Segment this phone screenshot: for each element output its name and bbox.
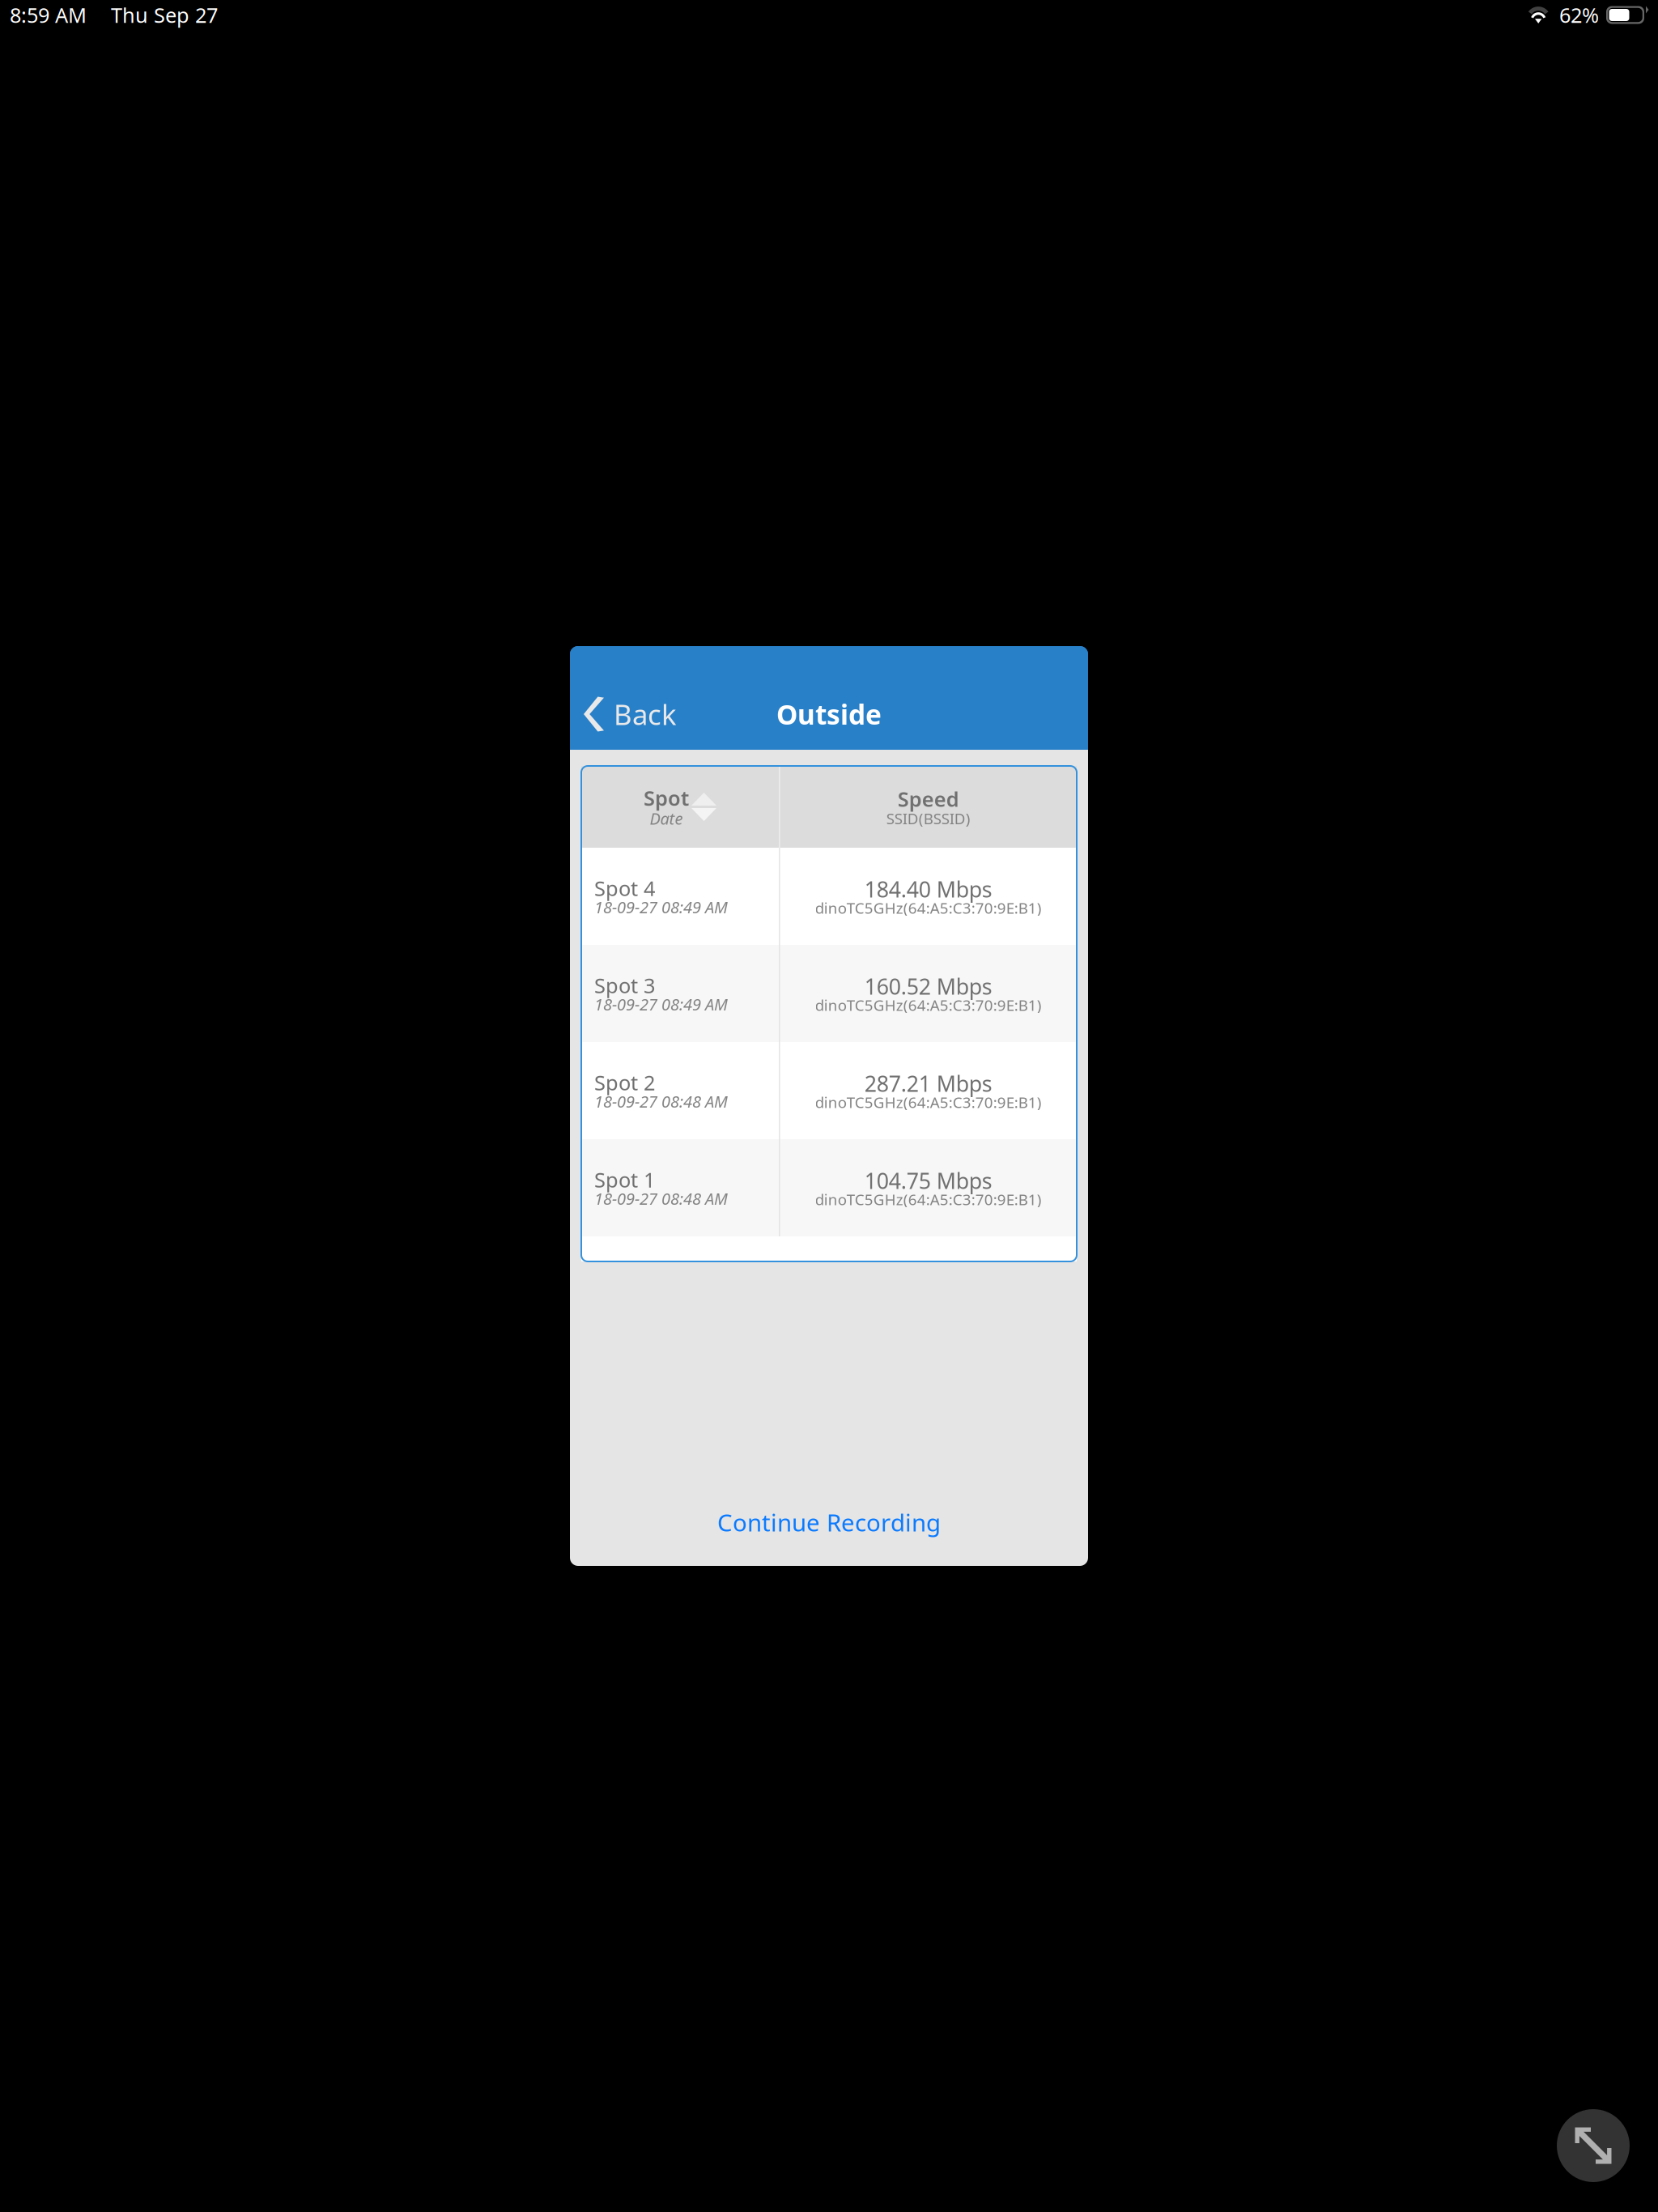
staticText: 18-09-27 08:48 AM — [594, 1188, 728, 1210]
staticText: Thu Sep 27 — [111, 1, 218, 29]
staticText: Spot 2 — [594, 1069, 655, 1096]
staticText: 8:59 AM — [10, 1, 87, 29]
staticText: 62% — [1559, 1, 1599, 29]
button[interactable]: Spot 2 — [581, 1042, 1077, 1139]
button[interactable]: Spot 1 — [581, 1139, 1077, 1236]
staticText: 160.52 Mbps — [864, 972, 992, 1001]
staticText: dinoTC5GHz(64:A5:C3:70:9E:B1) — [815, 995, 1042, 1015]
staticText: Spot 3 — [594, 972, 655, 999]
staticText: Continue Recording — [717, 1506, 941, 1538]
button[interactable]: Spot — [581, 766, 779, 848]
staticText: 104.75 Mbps — [864, 1166, 992, 1195]
staticText: dinoTC5GHz(64:A5:C3:70:9E:B1) — [815, 898, 1042, 918]
staticText: Outside — [776, 696, 882, 732]
staticText: Back — [614, 696, 677, 733]
staticText: 184.40 Mbps — [864, 875, 992, 903]
staticText: SSID(BSSID) — [886, 808, 971, 828]
staticText: 18-09-27 08:48 AM — [594, 1090, 728, 1112]
staticText: 18-09-27 08:49 AM — [594, 993, 728, 1015]
staticText: 287.21 Mbps — [864, 1069, 992, 1098]
button[interactable]: Expand window — [1557, 2109, 1630, 2182]
button[interactable]: Speed — [780, 766, 1077, 848]
button[interactable]: Spot 3 — [581, 945, 1077, 1042]
staticText: 18-09-27 08:49 AM — [594, 896, 728, 918]
button[interactable]: Continue Recording — [570, 1490, 1088, 1555]
button[interactable]: Back — [570, 678, 693, 750]
staticText: Speed — [898, 785, 959, 812]
staticText: dinoTC5GHz(64:A5:C3:70:9E:B1) — [815, 1092, 1042, 1112]
staticText: dinoTC5GHz(64:A5:C3:70:9E:B1) — [815, 1189, 1042, 1209]
button[interactable]: Spot 4 — [581, 848, 1077, 945]
staticText: Spot — [644, 784, 689, 811]
staticText: Date — [650, 807, 683, 829]
staticText: Spot 4 — [594, 875, 655, 902]
staticText: Spot 1 — [594, 1166, 655, 1193]
